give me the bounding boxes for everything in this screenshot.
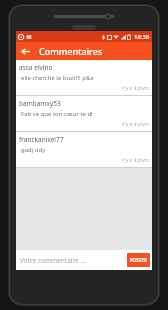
- staticText: Commentaires: [39, 45, 103, 57]
- button[interactable]: Votre commentaire ...: [16, 250, 127, 270]
- staticText: bambamxy53: [19, 99, 61, 108]
- staticText: 18:36: [134, 33, 150, 41]
- button[interactable]: POSTER: [127, 253, 150, 267]
- staticText: elle cherche le buzz!!! p&a: [21, 74, 94, 82]
- staticText: il y a 4 jours: [122, 121, 149, 128]
- button[interactable]: assa elvino: [16, 60, 152, 95]
- button[interactable]: franckanixel77: [16, 132, 152, 167]
- button[interactable]: Back: [16, 42, 34, 60]
- staticText: il y a 4 jours: [122, 85, 149, 92]
- staticText: Votre commentaire ...: [20, 256, 86, 265]
- staticText: Fait ce que ton cœur te di: [21, 110, 93, 118]
- staticText: franckanixel77: [19, 135, 64, 144]
- staticText: il y a 4 jours: [122, 157, 149, 164]
- staticText: assa elvino: [19, 63, 53, 72]
- button[interactable]: bambamxy53: [16, 96, 152, 131]
- staticText: gadj ody: [21, 146, 46, 154]
- staticText: POSTER: [130, 257, 147, 263]
